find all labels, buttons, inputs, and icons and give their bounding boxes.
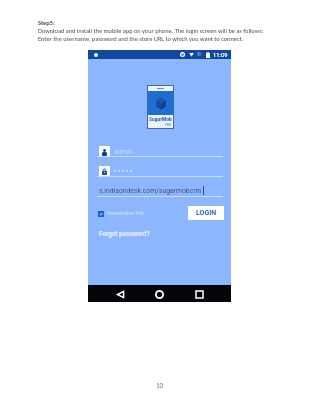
staticText: 11:09 xyxy=(213,52,228,59)
staticText: Remember Me xyxy=(107,210,145,217)
button[interactable]: Home xyxy=(152,287,166,301)
button[interactable]: admin xyxy=(97,145,223,157)
staticText: Enter the username, password and the sto… xyxy=(38,35,244,43)
staticText: PRO xyxy=(165,123,172,127)
staticText: Step5: xyxy=(38,19,55,27)
button[interactable] xyxy=(97,165,223,177)
staticText: LOGIN xyxy=(196,209,217,217)
staticText: SugarMob xyxy=(149,116,172,123)
button[interactable]: Recent apps xyxy=(192,287,206,301)
button[interactable]: LOGIN xyxy=(188,206,224,220)
staticText: Download and install the mobile app on y… xyxy=(38,27,264,35)
staticText: s.indiaondesk.com/sugarmobcrm xyxy=(99,187,202,195)
button[interactable]: s.indiaondesk.com/sugarmobcrm xyxy=(97,183,223,197)
button[interactable]: Remember Me xyxy=(98,210,145,217)
staticText: admin xyxy=(114,148,134,156)
button[interactable]: Forgot password? xyxy=(99,230,150,237)
button[interactable]: Back xyxy=(113,287,127,301)
staticText: 10 xyxy=(156,381,164,390)
